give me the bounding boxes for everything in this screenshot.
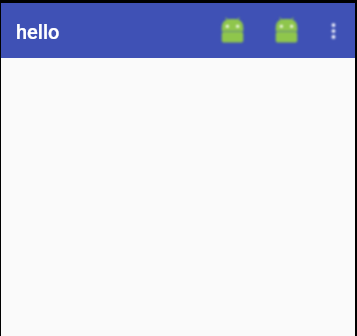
staticText: hello <box>16 20 60 43</box>
button[interactable]: Android <box>259 3 313 58</box>
button[interactable]: More options <box>313 3 354 58</box>
button[interactable]: Android <box>205 3 259 58</box>
